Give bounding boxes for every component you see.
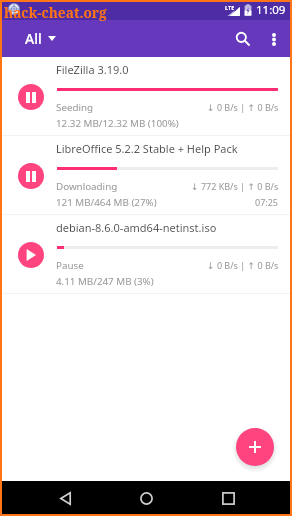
staticText: hack-cheat.org [4,3,107,22]
staticText: 07:25 [255,196,279,208]
button[interactable]: Pause [0,136,292,214]
button[interactable]: Pause [18,84,44,110]
staticText: Downloading [56,180,118,193]
staticText: All [25,29,42,48]
button[interactable]: Add torrent [236,428,274,466]
button[interactable]: All [0,22,70,55]
button[interactable]: Resume [18,242,44,268]
button[interactable]: Resume [0,215,292,293]
staticText: 12.32 MB/12.32 MB (100%) [56,117,179,130]
staticText: FileZilla 3.19.0 [56,62,129,77]
staticText: 121 MB/464 MB (27%) [56,196,157,209]
staticText: Pause [56,259,84,272]
staticText: 11:09 [256,2,286,18]
button[interactable]: Pause [0,57,292,135]
button[interactable]: More options [260,25,288,53]
staticText: debian-8.6.0-amd64-netinst.iso [56,220,217,235]
staticText: ↓ 0 B/s | ↑ 0 B/s [207,101,279,113]
button[interactable]: Search [226,22,260,56]
staticText: ↓ 772 KB/s | ↑ 0 B/s [191,180,279,192]
staticText: Seeding [56,101,94,114]
staticText: ↓ 0 B/s | ↑ 0 B/s [207,259,279,271]
button[interactable]: Pause [18,163,44,189]
button[interactable]: Back [47,481,83,516]
staticText: LibreOffice 5.2.2 Stable + Help Pack [56,141,238,156]
button[interactable]: Home [128,481,164,516]
button[interactable]: Recents [210,481,246,516]
staticText: LTE [225,4,235,11]
staticText: 4.11 MB/247 MB (3%) [56,275,154,288]
